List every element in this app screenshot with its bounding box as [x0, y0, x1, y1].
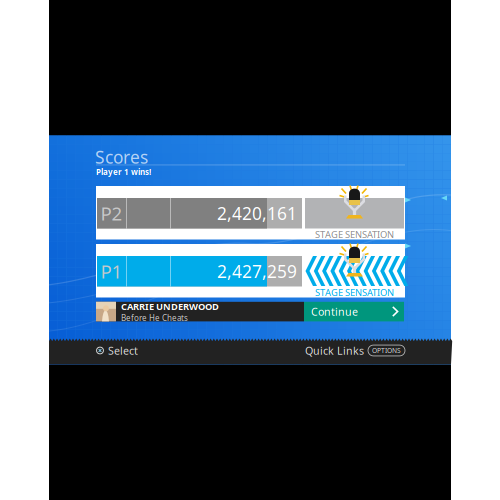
button[interactable]: P1: [96, 244, 405, 297]
staticText: OPTIONS: [372, 346, 401, 355]
staticText: Player 1 wins!: [96, 166, 151, 177]
staticText: Continue: [311, 304, 358, 319]
button[interactable]: Continue: [304, 302, 404, 321]
button[interactable]: Select: [96, 343, 138, 358]
staticText: CARRIE UNDERWOOD: [121, 300, 219, 312]
staticText: Quick Links: [305, 343, 364, 358]
staticText: P1: [100, 259, 122, 284]
button[interactable]: P2: [96, 186, 405, 239]
staticText: Before He Cheats: [121, 312, 188, 323]
button[interactable]: Quick Links: [305, 343, 405, 358]
staticText: 2,420,161: [217, 202, 297, 225]
button[interactable]: CARRIE UNDERWOOD: [96, 302, 304, 321]
staticText: STAGE SENSATION: [315, 228, 394, 241]
staticText: P2: [100, 201, 122, 226]
staticText: STAGE SENSATION: [315, 286, 394, 299]
staticText: 2,427,259: [217, 260, 297, 283]
staticText: Scores: [95, 145, 148, 168]
staticText: Select: [108, 343, 138, 358]
